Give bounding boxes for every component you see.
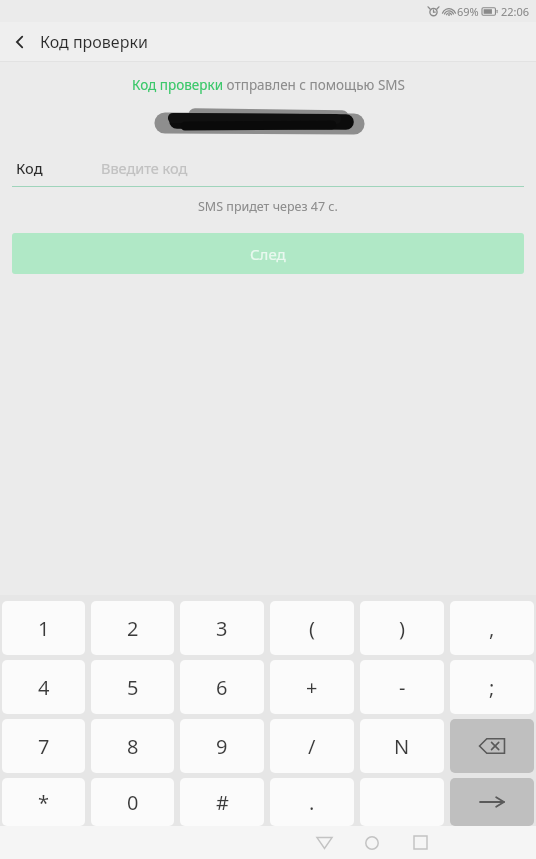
staticText: 4 [38, 674, 50, 701]
staticText: SMS придет через 47 с. [198, 198, 338, 215]
button[interactable]: / [270, 719, 354, 773]
staticText: 1 [38, 615, 50, 642]
button[interactable]: + [270, 660, 354, 714]
staticText: # [216, 789, 229, 816]
staticText: 22:06 [501, 4, 530, 19]
button[interactable]: Recent apps [396, 826, 444, 859]
button[interactable]: ( [270, 601, 354, 655]
button[interactable]: Back [300, 826, 348, 859]
staticText: 2 [127, 615, 139, 642]
button[interactable]: 7 [2, 719, 85, 773]
staticText: , [489, 615, 495, 642]
button[interactable]: * [2, 778, 85, 826]
button[interactable]: Enter [450, 778, 534, 826]
staticText: 9 [216, 733, 228, 760]
staticText: 3 [216, 615, 228, 642]
staticText: 0 [127, 789, 139, 816]
staticText: / [308, 733, 316, 760]
staticText: След [250, 244, 286, 264]
button[interactable]: Home [348, 826, 396, 859]
button[interactable]: , [450, 601, 534, 655]
staticText: 8 [127, 733, 139, 760]
staticText: ; [489, 674, 495, 701]
button[interactable]: 5 [91, 660, 174, 714]
staticText: N [394, 733, 410, 760]
staticText: ) [399, 615, 405, 642]
button[interactable]: # [180, 778, 264, 826]
button[interactable]: 1 [2, 601, 85, 655]
staticText: . [309, 789, 315, 816]
button[interactable]: N [360, 719, 444, 773]
button[interactable]: След [12, 233, 524, 274]
button[interactable]: 2 [91, 601, 174, 655]
button[interactable]: Backspace [450, 719, 534, 773]
button[interactable]: . [270, 778, 354, 826]
staticText: 5 [127, 674, 139, 701]
button[interactable]: 4 [2, 660, 85, 714]
button[interactable]: - [360, 660, 444, 714]
button[interactable]: ; [450, 660, 534, 714]
button[interactable]: 9 [180, 719, 264, 773]
button[interactable]: Код [0, 150, 536, 186]
button[interactable]: 0 [91, 778, 174, 826]
button[interactable]: 6 [180, 660, 264, 714]
staticText: 69% [457, 4, 479, 19]
button[interactable]: 8 [91, 719, 174, 773]
staticText: 7 [38, 733, 50, 760]
staticText: * [38, 789, 50, 816]
button[interactable]: ) [360, 601, 444, 655]
staticText: - [399, 674, 406, 701]
staticText: + [306, 674, 318, 701]
staticText: Код проверки отправлен с помощью SMS [132, 76, 405, 94]
staticText: ( [309, 615, 315, 642]
button[interactable]: 3 [180, 601, 264, 655]
staticText: 6 [216, 674, 228, 701]
staticText: Код [16, 158, 43, 178]
staticText: Введите код [101, 158, 188, 178]
staticText: Код проверки [40, 31, 148, 53]
button[interactable]: Back [0, 22, 40, 61]
